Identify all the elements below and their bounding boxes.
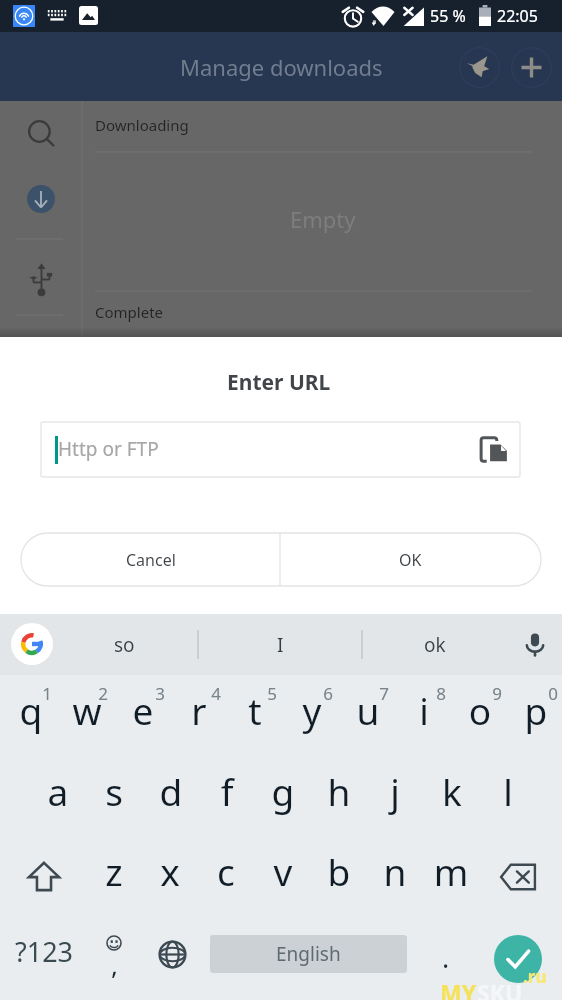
button[interactable]: Change keyboard language (146, 926, 198, 982)
button[interactable]: so (54, 614, 194, 675)
staticText: z (84, 846, 144, 896)
staticText: b (309, 846, 369, 896)
button[interactable]: Emoji and comma (88, 931, 140, 987)
button[interactable]: ?123 (6, 925, 82, 977)
staticText: Manage downloads (180, 52, 383, 82)
button[interactable]: Downloads (27, 185, 55, 213)
staticText: k (422, 766, 482, 816)
staticText: 9 (467, 682, 527, 705)
staticText: l (478, 766, 538, 816)
button[interactable]: OK (280, 533, 541, 586)
staticText: t (225, 685, 285, 735)
button[interactable]: Paste from clipboard (475, 431, 513, 469)
staticText: 6 (298, 682, 358, 705)
staticText: Enter URL (227, 368, 331, 397)
button[interactable]: ok (365, 614, 505, 675)
staticText: 0 (523, 682, 562, 705)
staticText: u (338, 685, 398, 735)
staticText: a (28, 766, 88, 816)
button[interactable]: Shift (16, 848, 72, 904)
staticText: I (277, 632, 284, 658)
staticText: d (141, 766, 201, 816)
button[interactable]: I (210, 614, 350, 675)
staticText: h (309, 766, 369, 816)
staticText: so (114, 632, 135, 658)
staticText: .ru (523, 965, 547, 988)
staticText: Complete (95, 302, 164, 322)
staticText: 4 (186, 682, 246, 705)
staticText: x (140, 846, 200, 896)
staticText: o (450, 685, 510, 735)
staticText: p (506, 685, 562, 735)
staticText: Downloading (95, 115, 189, 135)
staticText: 5 (242, 682, 302, 705)
staticText: 2 (73, 682, 133, 705)
staticText: SKU (477, 977, 523, 1000)
button[interactable]: . (420, 931, 472, 987)
staticText: ok (424, 632, 446, 658)
staticText: m (421, 846, 481, 896)
button[interactable]: Backspace (490, 849, 546, 905)
button[interactable]: Boost download (459, 47, 500, 88)
staticText: e (113, 685, 173, 735)
staticText: 8 (411, 682, 471, 705)
staticText: Empty (290, 204, 356, 234)
button[interactable]: Http or FTP (41, 422, 520, 477)
staticText: v (253, 846, 313, 896)
staticText: ?123 (15, 933, 74, 970)
staticText: English (276, 941, 341, 967)
staticText: g (253, 766, 313, 816)
staticText: s (84, 766, 144, 816)
staticText: j (365, 766, 425, 816)
staticText: c (196, 846, 256, 896)
staticText: n (365, 846, 425, 896)
button[interactable]: Voice input (519, 628, 551, 660)
staticText: 55 % (430, 5, 466, 27)
staticText: , (111, 947, 118, 982)
button[interactable]: Enter (494, 935, 542, 983)
staticText: q (1, 685, 61, 735)
button[interactable]: Search (18, 111, 62, 155)
button[interactable]: Google search (11, 623, 53, 665)
button[interactable]: Cancel (21, 533, 280, 586)
staticText: w (57, 685, 117, 735)
staticText: Cancel (126, 549, 176, 571)
staticText: f (197, 766, 257, 816)
button[interactable]: Add download (511, 47, 552, 88)
staticText: MY (440, 977, 477, 1000)
button[interactable]: USB transfer (22, 256, 60, 302)
staticText: . (442, 939, 450, 976)
staticText: Http or FTP (58, 436, 159, 462)
staticText: OK (399, 549, 422, 571)
staticText: 22:05 (497, 5, 538, 27)
staticText: 1 (17, 682, 77, 705)
staticText: y (282, 685, 342, 735)
staticText: 3 (130, 682, 190, 705)
staticText: r (169, 685, 229, 735)
staticText: i (394, 685, 454, 735)
staticText: 7 (354, 682, 414, 705)
button[interactable]: English (210, 935, 407, 973)
